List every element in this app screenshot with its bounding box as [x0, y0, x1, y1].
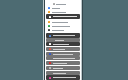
button[interactable]	[46, 42, 80, 46]
button[interactable]	[46, 56, 80, 60]
button[interactable]	[46, 6, 80, 10]
button[interactable]	[46, 28, 80, 32]
button[interactable]	[46, 61, 80, 65]
button[interactable]	[46, 14, 80, 19]
button[interactable]	[46, 66, 80, 70]
button[interactable]	[46, 71, 80, 75]
button[interactable]	[46, 2, 80, 6]
button[interactable]	[46, 33, 80, 38]
button[interactable]	[46, 24, 80, 28]
button[interactable]	[46, 75, 80, 80]
button[interactable]	[46, 47, 80, 51]
button[interactable]	[46, 52, 80, 56]
button[interactable]	[46, 38, 80, 42]
button[interactable]	[46, 10, 80, 14]
button[interactable]	[46, 20, 80, 24]
